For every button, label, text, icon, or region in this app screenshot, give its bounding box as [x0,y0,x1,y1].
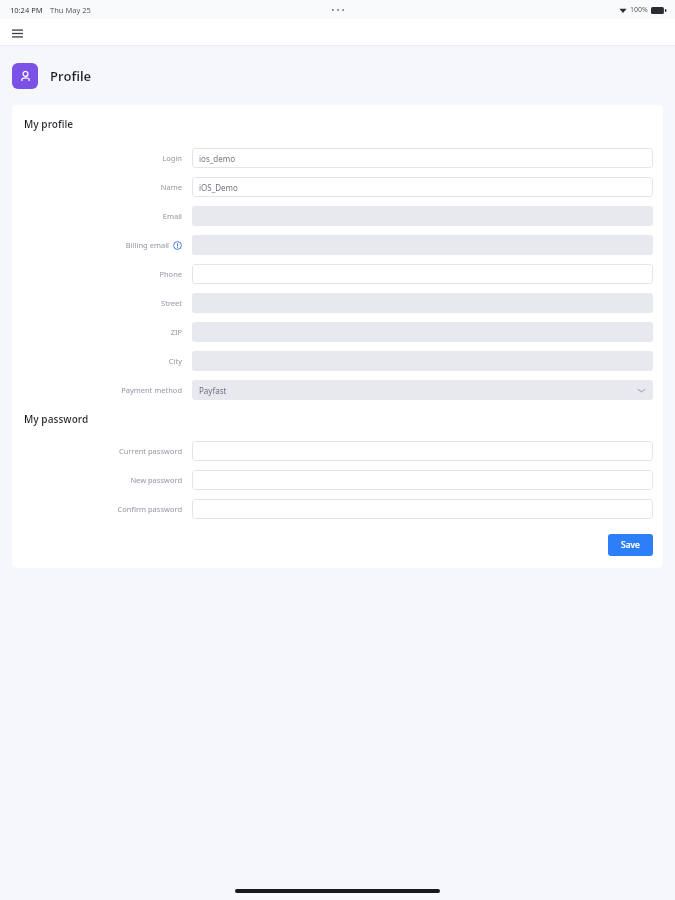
staticText: My profile [24,117,74,131]
staticText: 100% [630,5,648,15]
staticText: iOS_Demo [199,182,238,193]
button[interactable] [192,441,653,461]
staticText: Email [162,211,182,221]
staticText: Payment method [121,385,182,395]
staticText: Phone [159,269,182,279]
button[interactable]: iOS_Demo [192,177,653,197]
staticText: Confirm password [117,504,182,514]
staticText: Street [161,298,182,308]
button[interactable]: ios_demo [192,148,653,168]
button[interactable] [192,264,653,284]
button[interactable] [192,470,653,490]
staticText: Current password [119,446,182,456]
staticText: City [168,356,182,366]
button[interactable]: Payfast [192,380,653,400]
staticText: ios_demo [199,153,236,164]
button[interactable]: Save [608,534,653,556]
staticText: Login [162,153,182,163]
staticText: Payfast [199,385,227,396]
staticText: Name [160,182,182,192]
other: Billing email info [173,241,182,250]
staticText: Profile [50,67,92,85]
staticText: New password [130,475,182,485]
button[interactable] [192,499,653,519]
staticText: ZIP [170,327,182,337]
staticText: Thu May 25 [50,5,91,15]
button[interactable]: Menu [6,22,28,44]
staticText: Billing email [125,240,169,250]
staticText: Save [621,539,640,551]
staticText: 10:24 PM [10,5,43,15]
staticText: My password [24,412,89,426]
